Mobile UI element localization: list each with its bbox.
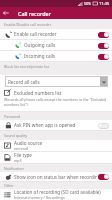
button[interactable]: Show icon on status bar when recording [0,172,112,182]
button[interactable]: Back [0,7,12,19]
staticText: Block list secret/private list [4,64,49,69]
staticText: Audio source [14,140,43,146]
staticText: (Records all phone calls except the numb… [4,97,109,107]
button[interactable]: Outgoing calls [0,40,112,51]
button[interactable]: Location of recording (SD card available… [0,189,112,200]
staticText: Internal memory / Recordings [14,195,65,200]
staticText: Excluded numbers list [14,90,62,96]
staticText: Outgoing calls [24,42,97,48]
staticText: Incoming calls [24,53,97,59]
staticText: Enable call recorder [14,31,97,37]
button[interactable]: Excluded numbers list [0,88,112,112]
staticText: Sound quality [4,133,28,138]
staticText: Enable/Disable call recorder [4,22,52,27]
staticText: Ask PIN when app is opened [14,122,97,128]
staticText: 50% [84,1,92,6]
button[interactable]: Enable call recorder [0,29,112,40]
staticText: Call recorder [18,10,51,17]
staticText: mp3 [14,158,22,163]
button[interactable]: Audio source [0,140,112,152]
staticText: 11:35 [99,1,110,6]
button[interactable]: Ask PIN when app is opened [0,120,112,131]
button[interactable]: Incoming calls [0,51,112,62]
button[interactable]: Record all calls [5,76,108,87]
staticText: voicecall [14,146,29,151]
staticText: Notification [4,166,24,171]
staticText: File type [14,152,32,158]
staticText: Other [4,183,14,188]
staticText: Location of recording (SD card available… [14,189,101,195]
staticText: Record all calls [8,79,100,85]
button[interactable]: File type [0,152,112,164]
staticText: Show icon on status bar when recording [14,174,97,180]
staticText: Password [4,114,21,119]
